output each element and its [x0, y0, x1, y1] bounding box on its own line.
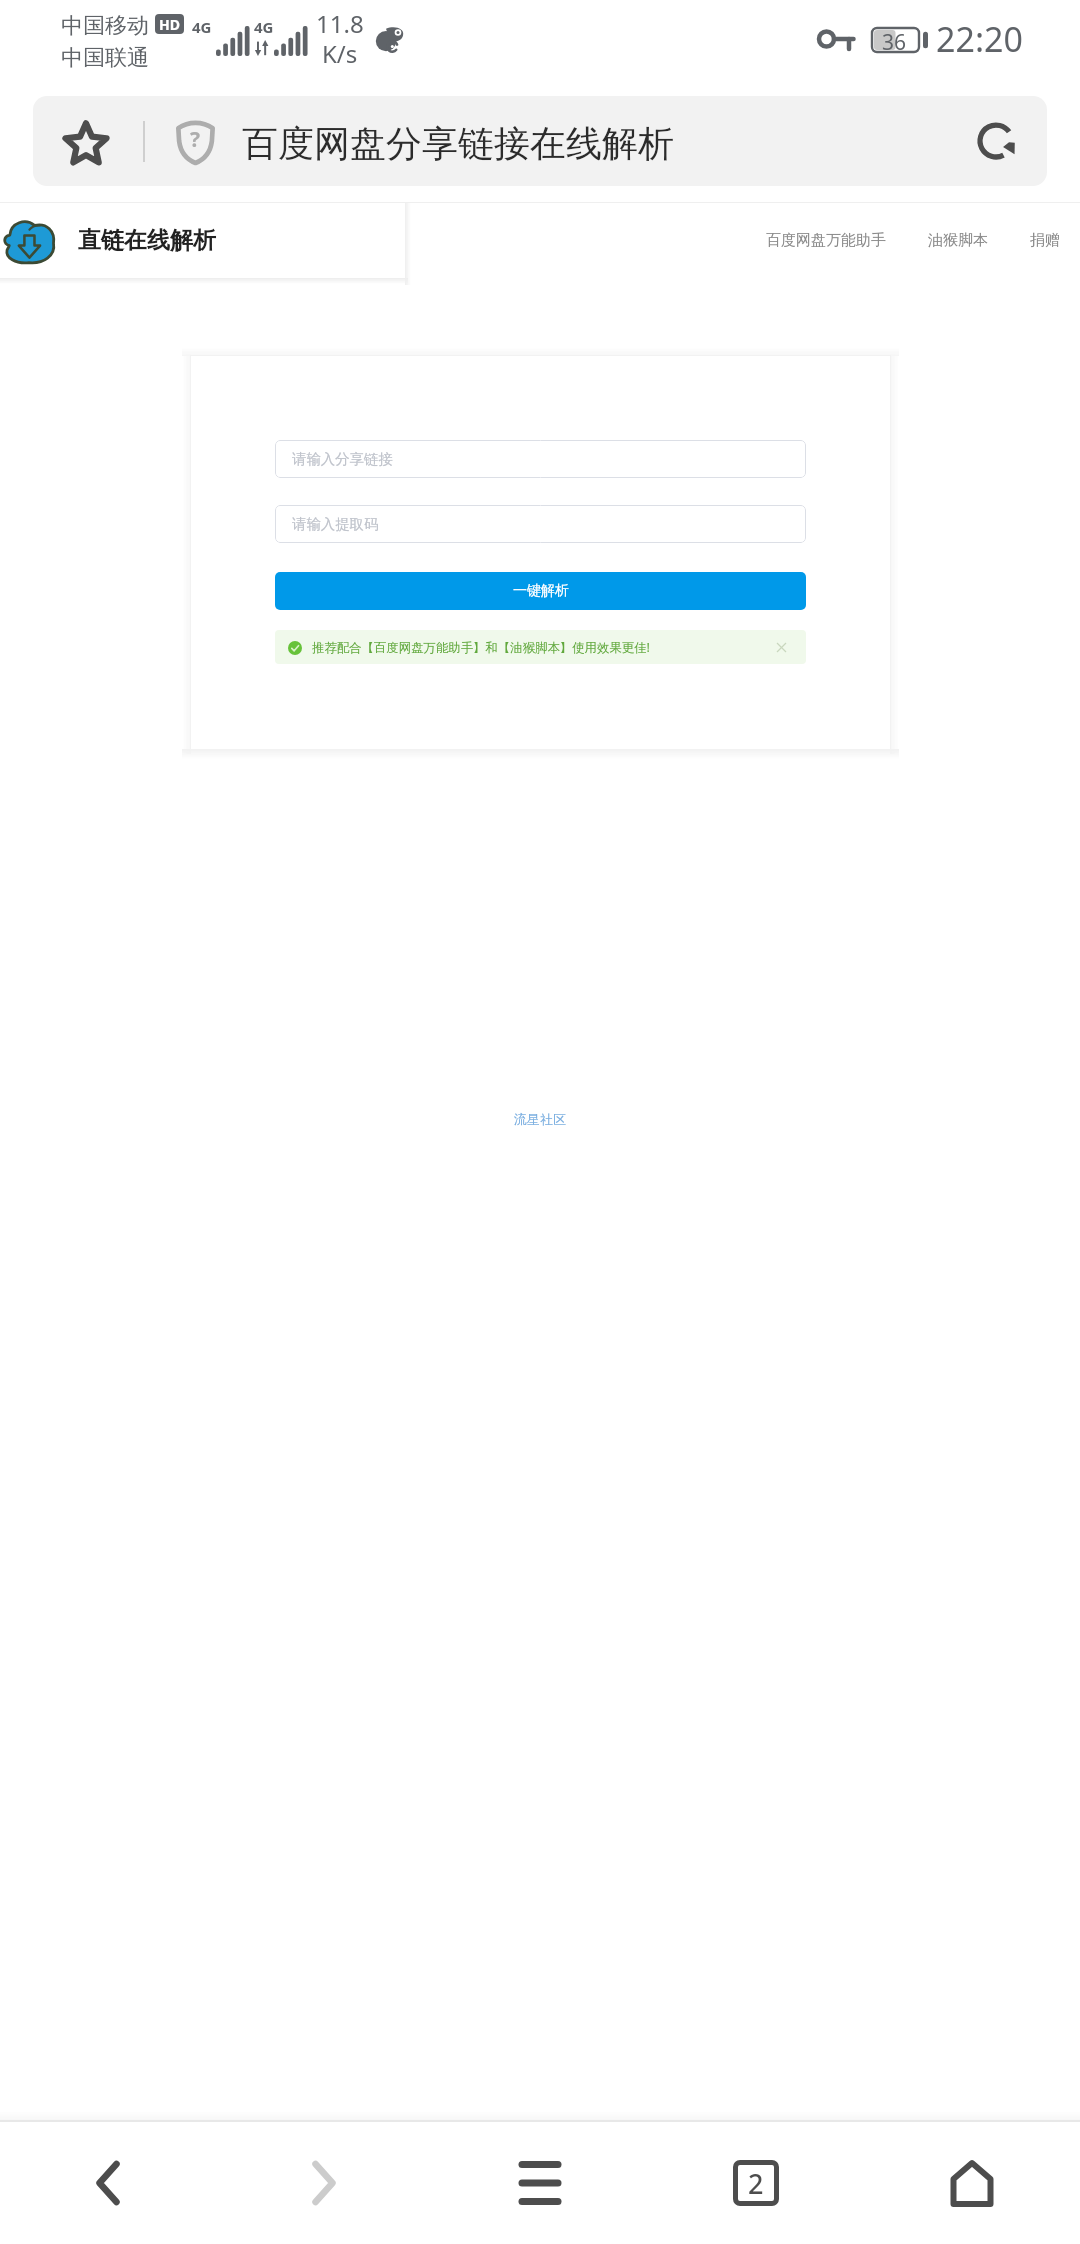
button[interactable]: 百度网盘万能助手 [766, 221, 886, 260]
staticText: ? [190, 125, 201, 154]
staticText: 百度网盘分享链接在线解析 [242, 121, 674, 166]
staticText: K/s [322, 37, 358, 70]
staticText: HD [159, 15, 180, 34]
button[interactable]: 油猴脚本 [928, 221, 988, 260]
staticText: 请输入提取码 [292, 515, 379, 533]
button[interactable]: 一键解析 [275, 572, 806, 610]
staticText: 一键解析 [513, 582, 569, 600]
button[interactable]: 请输入分享链接 [275, 440, 806, 478]
staticText: 中国移动 [61, 12, 149, 40]
button[interactable]: Bookmark [53, 111, 119, 177]
button[interactable]: Close [770, 636, 792, 658]
staticText: 2 [748, 2165, 764, 2202]
button[interactable]: Tabs [648, 2122, 864, 2244]
staticText: 捐赠 [1030, 231, 1060, 250]
staticText: 22:20 [936, 16, 1023, 62]
staticText: 11.8 [316, 7, 364, 40]
button[interactable]: 捐赠 [1030, 221, 1060, 260]
staticText: 油猴脚本 [928, 231, 988, 250]
staticText: 流星社区 [514, 1111, 566, 1127]
staticText: 百度网盘万能助手 [766, 231, 886, 250]
button[interactable]: Site security info [164, 111, 226, 173]
staticText: 请输入分享链接 [292, 450, 393, 468]
button[interactable]: Home [864, 2122, 1080, 2244]
staticText: 36 [882, 28, 907, 57]
button[interactable]: 请输入提取码 [275, 505, 806, 543]
staticText: 推荐配合【百度网盘万能助手】和【油猴脚本】使用效果更佳! [312, 639, 650, 656]
button[interactable]: Menu [432, 2122, 648, 2244]
staticText: 4G [254, 17, 274, 37]
staticText: 直链在线解析 [78, 226, 216, 255]
staticText: 中国联通 [61, 44, 149, 72]
staticText: 4G [192, 17, 212, 37]
button[interactable]: 流星社区 [514, 1111, 566, 1127]
button[interactable]: Refresh [961, 106, 1031, 176]
button[interactable]: Back [0, 2122, 216, 2244]
button[interactable]: 直链在线解析 [0, 203, 216, 278]
button[interactable]: Forward [216, 2122, 432, 2244]
